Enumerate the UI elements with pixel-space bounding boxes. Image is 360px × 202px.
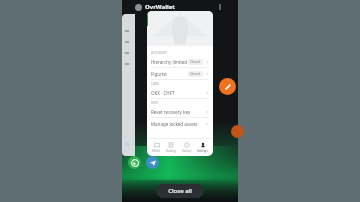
button[interactable]: More options — [215, 2, 225, 12]
button[interactable]: Figurist — [147, 68, 213, 79]
staticText: OKX · CHFT — [151, 90, 175, 96]
staticText: OvrWallet — [145, 3, 175, 11]
button[interactable]: WhatsApp — [128, 156, 141, 169]
staticText: ACCOUNTS — [151, 51, 167, 55]
button[interactable]: History — [181, 142, 193, 153]
staticText: Settings — [197, 149, 208, 153]
staticText: Closed — [190, 60, 201, 64]
button[interactable]: Close all — [156, 184, 204, 198]
button[interactable]: Settings — [196, 142, 209, 153]
staticText: Close all — [168, 187, 192, 195]
button[interactable]: Chat bubble — [231, 125, 244, 138]
staticText: Reset recovery key — [151, 109, 191, 115]
button[interactable]: Hierarchy limited — [147, 56, 213, 67]
button[interactable]: Edit — [219, 78, 236, 95]
button[interactable]: ACCOUNTS — [147, 11, 213, 156]
button[interactable]: Telegram — [146, 156, 159, 169]
staticText: Wallet — [152, 149, 161, 153]
staticText: CARD — [151, 82, 159, 86]
button[interactable]: Manage locked assets — [147, 118, 213, 129]
staticText: KEYS — [151, 101, 158, 105]
staticText: Staking — [166, 149, 176, 153]
button[interactable]: App icon — [135, 4, 142, 11]
staticText: History — [182, 149, 192, 153]
button[interactable]: Wallet — [151, 142, 162, 153]
staticText: Closed — [190, 72, 201, 76]
button[interactable]: Previous app — [122, 14, 135, 156]
staticText: Manage locked assets — [151, 121, 198, 127]
button[interactable]: Reset recovery key — [147, 106, 213, 117]
button[interactable]: OKX · CHFT — [147, 87, 213, 98]
staticText: Hierarchy limited — [151, 59, 188, 65]
button[interactable]: Staking — [165, 142, 177, 153]
staticText: Figurist — [151, 71, 167, 77]
